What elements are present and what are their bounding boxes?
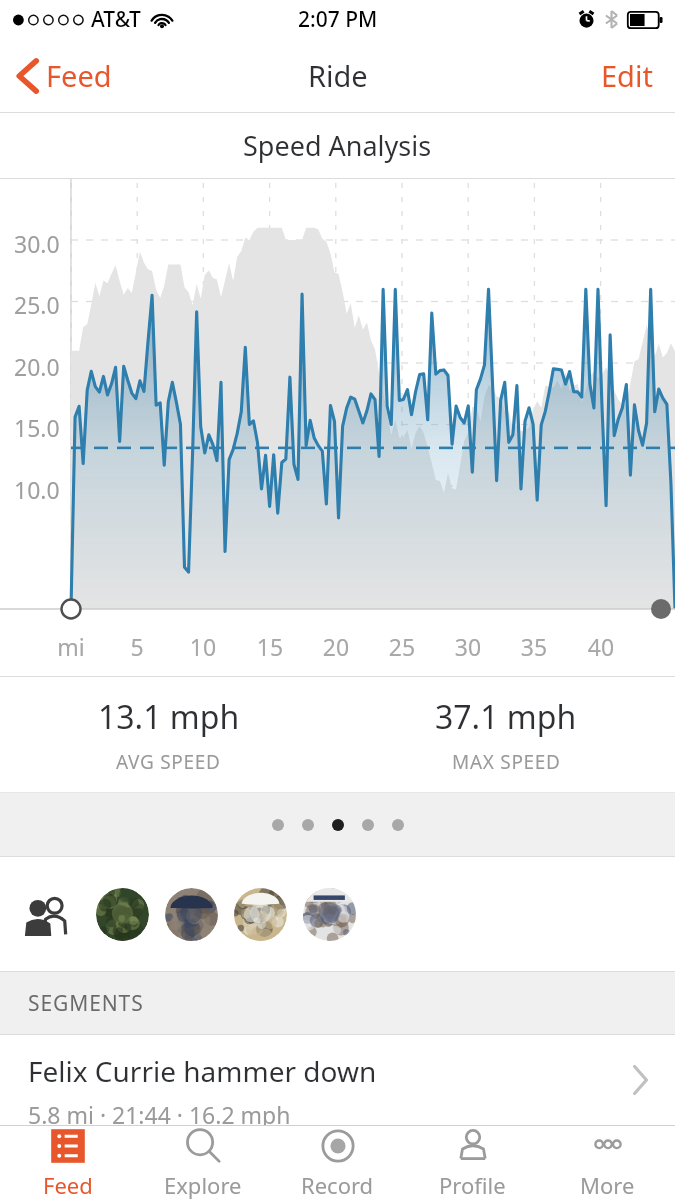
button[interactable]: Athlete photo <box>303 888 356 941</box>
staticText: Felix Currie hammer down <box>28 1052 377 1090</box>
staticText: 20 <box>306 631 366 662</box>
staticText: 5 <box>107 631 167 662</box>
staticText: Ride <box>308 56 368 95</box>
button[interactable]: Page 5 <box>392 819 404 831</box>
staticText: 5.8 mi · 21:44 · 16.2 mph <box>28 1099 291 1125</box>
button[interactable]: Page 2 <box>302 819 314 831</box>
staticText: Feed <box>43 1170 93 1200</box>
staticText: 35 <box>504 631 564 662</box>
staticText: Edit <box>601 56 653 95</box>
staticText: AT&T <box>91 5 141 34</box>
button[interactable]: Page 4 <box>362 819 374 831</box>
staticText: 20.0 <box>14 351 60 382</box>
staticText: AVG SPEED <box>116 749 221 775</box>
staticText: 30.0 <box>14 228 60 259</box>
button[interactable]: 13.1 mph <box>0 677 337 792</box>
staticText: Speed Analysis <box>243 127 432 164</box>
button[interactable]: Record <box>270 1125 405 1200</box>
button[interactable]: Felix Currie hammer down <box>0 1035 675 1125</box>
staticText: mi <box>41 631 101 662</box>
button[interactable]: 37.1 mph <box>337 677 675 792</box>
staticText: 37.1 mph <box>435 695 577 739</box>
button[interactable]: More <box>540 1125 675 1200</box>
staticText: 15 <box>240 631 300 662</box>
staticText: More <box>580 1170 635 1200</box>
staticText: 15.0 <box>14 412 60 443</box>
staticText: 30 <box>438 631 498 662</box>
staticText: 10.0 <box>14 474 60 505</box>
staticText: Record <box>301 1170 374 1200</box>
staticText: 13.1 mph <box>98 695 240 739</box>
button[interactable]: Athlete photo <box>234 888 287 941</box>
staticText: 25 <box>372 631 432 662</box>
button[interactable]: Page 3 <box>332 819 344 831</box>
button[interactable]: Profile <box>405 1125 540 1200</box>
button[interactable]: Feed <box>8 48 120 103</box>
staticText: SEGMENTS <box>28 989 144 1018</box>
button[interactable]: Explore <box>135 1125 270 1200</box>
staticText: Feed <box>46 56 112 95</box>
button[interactable]: Feed <box>0 1125 135 1200</box>
staticText: Profile <box>439 1170 506 1200</box>
staticText: MAX SPEED <box>452 749 561 775</box>
button[interactable]: Edit <box>593 48 661 103</box>
button[interactable]: Kudos from athletes <box>22 894 70 936</box>
button[interactable]: Athlete photo <box>165 888 218 941</box>
staticText: 2:07 PM <box>298 5 378 34</box>
staticText: 10 <box>173 631 233 662</box>
button[interactable]: Page 1 <box>272 819 284 831</box>
staticText: 40 <box>571 631 631 662</box>
button[interactable]: Athlete photo <box>96 888 149 941</box>
staticText: Explore <box>164 1170 242 1200</box>
staticText: 25.0 <box>14 289 60 320</box>
